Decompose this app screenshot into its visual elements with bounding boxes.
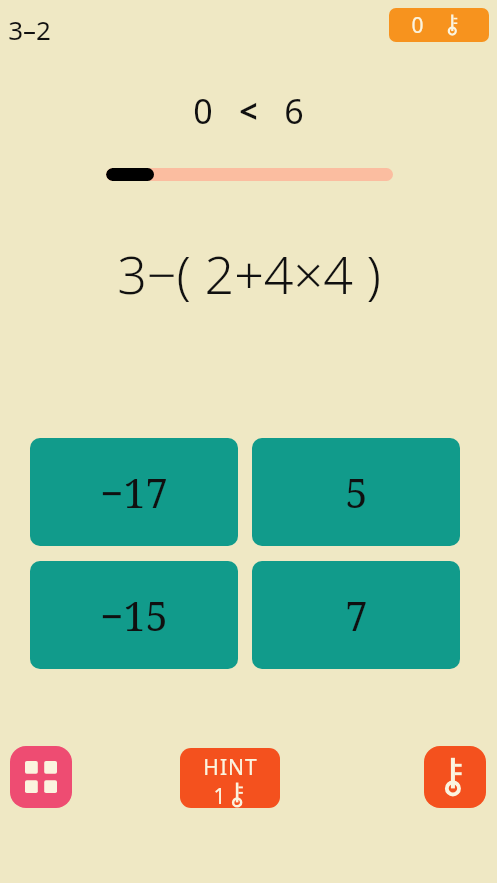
staticText: 6 (284, 88, 304, 134)
button[interactable]: Level select (10, 746, 72, 808)
staticText: 3–2 (8, 12, 51, 47)
button[interactable]: 5 (252, 438, 460, 546)
staticText: −17 (100, 465, 168, 519)
staticText: < (239, 89, 258, 133)
staticText: 0 (411, 11, 424, 40)
staticText: 0 (193, 88, 213, 134)
staticText: −15 (100, 588, 168, 642)
button[interactable]: Keys owned (389, 8, 489, 42)
staticText: HINT (203, 753, 258, 782)
button[interactable]: HINT (180, 748, 280, 808)
staticText: 3−( 2+4×4 ) (117, 238, 381, 309)
staticText: 7 (345, 588, 368, 642)
button[interactable]: −15 (30, 561, 238, 669)
button[interactable]: Use key (424, 746, 486, 808)
staticText: 5 (345, 465, 368, 519)
staticText: 1 (213, 782, 226, 808)
button[interactable]: −17 (30, 438, 238, 546)
button[interactable]: 7 (252, 561, 460, 669)
